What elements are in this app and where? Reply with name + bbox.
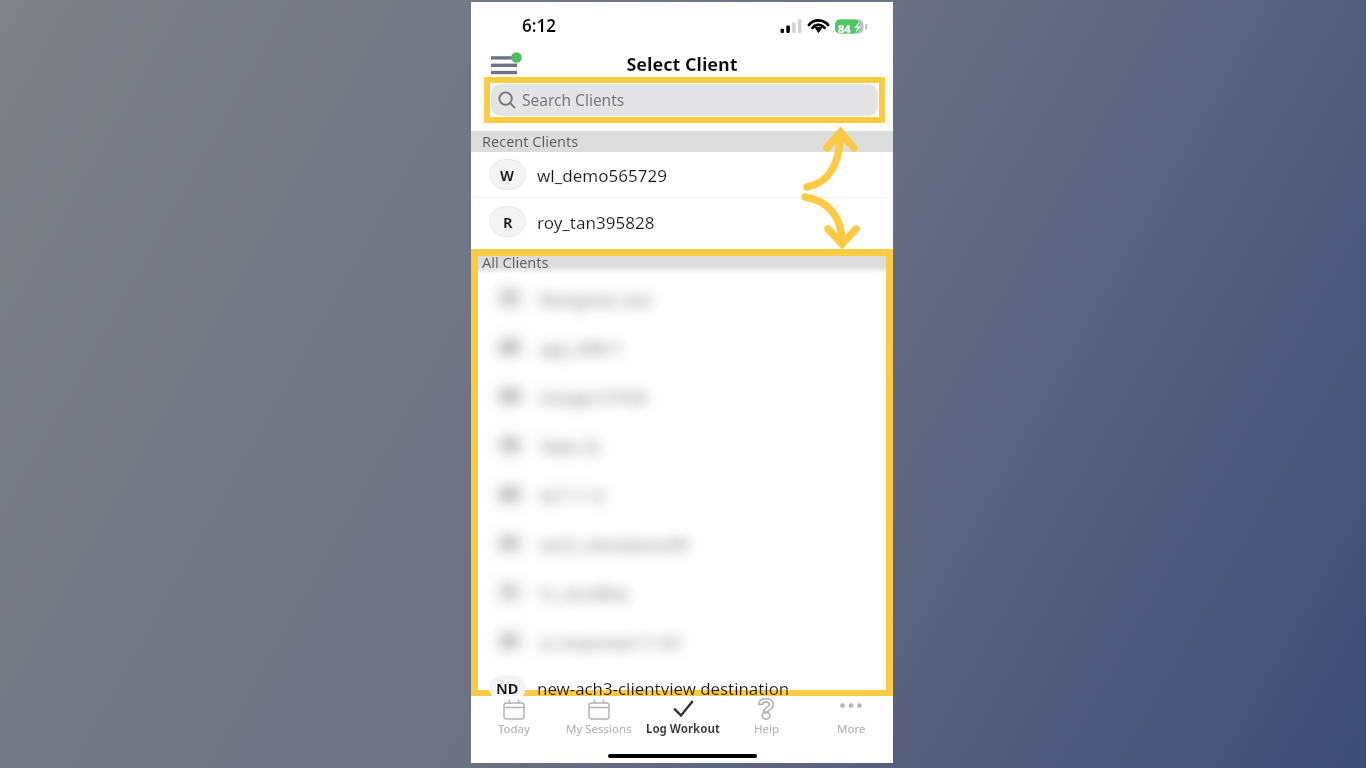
button[interactable]: More <box>809 696 893 742</box>
button[interactable]: ZC <box>478 273 886 322</box>
staticText: R <box>503 212 513 232</box>
staticText: All Clients <box>482 252 549 269</box>
button[interactable]: AC <box>478 518 886 567</box>
button[interactable]: AC <box>478 616 886 665</box>
staticText: AC <box>501 534 519 552</box>
staticText: roy_tan395828 <box>537 211 655 234</box>
button[interactable]: GD <box>478 371 886 420</box>
button[interactable]: My Sessions <box>556 696 641 742</box>
staticText: Log Workout <box>646 721 720 737</box>
button[interactable]: TD <box>478 420 886 469</box>
staticText: Help <box>754 721 780 737</box>
staticText: ZC <box>502 289 519 307</box>
staticText: Tabb-22 <box>539 435 601 457</box>
button[interactable]: W <box>471 152 893 197</box>
staticText: AD <box>500 485 520 503</box>
button[interactable]: AD <box>478 322 886 371</box>
staticText: Search Clients <box>522 89 625 110</box>
staticText: TD <box>501 436 519 454</box>
staticText: Google-57536 <box>539 386 648 408</box>
button[interactable]: Menu <box>485 48 519 78</box>
button[interactable]: AD <box>478 469 886 518</box>
staticText: W <box>500 165 515 185</box>
staticText: ac-imported-11-87 <box>539 631 682 653</box>
button[interactable]: Help <box>725 696 809 742</box>
button[interactable]: ND <box>478 675 886 700</box>
staticText: ach3_clientdemo99 <box>539 533 689 555</box>
staticText: AC <box>501 632 519 650</box>
button[interactable]: Today <box>471 696 556 742</box>
staticText: Today <box>498 721 530 737</box>
staticText: ND <box>496 678 519 698</box>
staticText: Select Client <box>471 52 893 77</box>
staticText: app_49811 <box>539 337 624 359</box>
staticText: 84 <box>838 21 851 36</box>
staticText: lifeisgreat_test <box>539 288 653 310</box>
staticText: TL <box>502 583 518 601</box>
button[interactable]: TL <box>478 567 886 616</box>
staticText: TL_ALL88sb <box>539 582 629 604</box>
staticText: My Sessions <box>566 721 632 737</box>
button[interactable]: R <box>471 198 893 245</box>
staticText: Recent Clients <box>482 131 579 151</box>
staticText: wl_demo565729 <box>537 164 667 187</box>
staticText: AD <box>500 338 520 356</box>
button[interactable]: Search Clients <box>491 84 878 116</box>
button[interactable]: Log Workout <box>641 696 725 742</box>
staticText: 6:12 <box>522 14 556 37</box>
staticText: More <box>837 721 866 737</box>
staticText: ALT-7-12 <box>539 484 606 506</box>
staticText: new-ach3-clientview destination <box>537 677 790 700</box>
staticText: GD <box>500 387 520 405</box>
